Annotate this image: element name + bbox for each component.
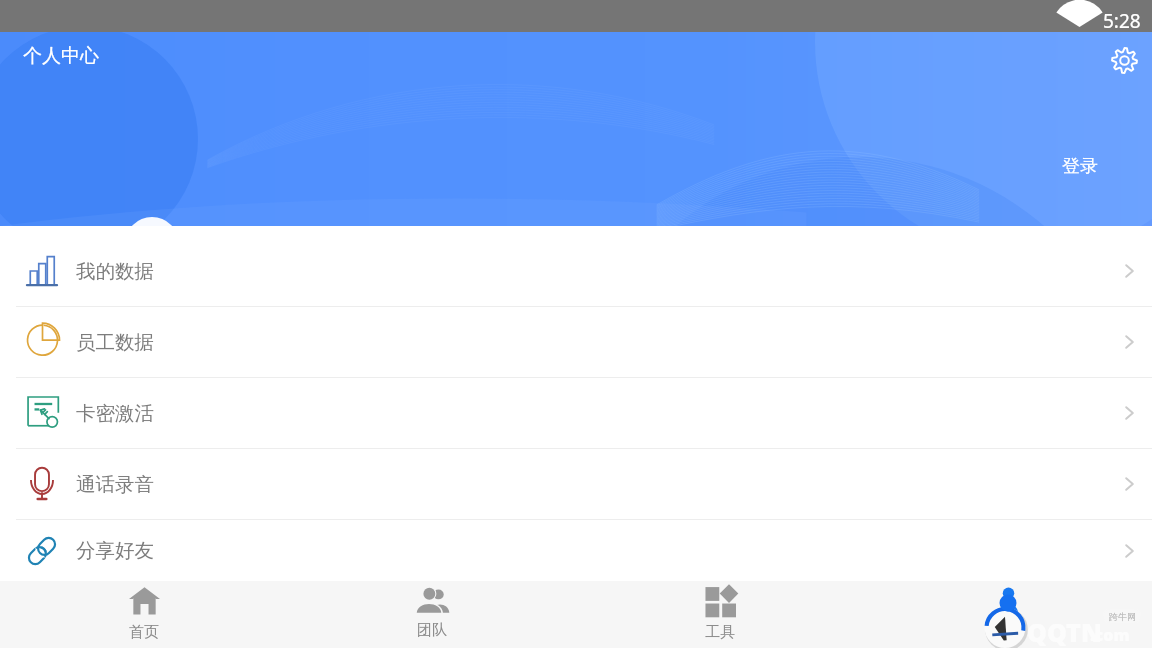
staticText: 首页	[129, 623, 159, 642]
button[interactable]: 团队	[288, 581, 576, 648]
staticText: QQTN	[1027, 615, 1102, 648]
staticText: 我的数据	[76, 259, 154, 284]
staticText: 工具	[705, 623, 735, 642]
button[interactable]: 我的	[864, 581, 1152, 648]
staticText: 卡密激活	[76, 401, 154, 426]
button[interactable]: 首页	[0, 581, 288, 648]
staticText: 团队	[417, 621, 447, 640]
staticText: 5:28	[1103, 8, 1141, 34]
staticText: 分享好友	[76, 538, 154, 563]
staticText: 通话录音	[76, 472, 154, 497]
staticText: 我的	[993, 621, 1023, 640]
button[interactable]: 卡密激活	[0, 378, 1152, 448]
button[interactable]: Settings	[1104, 40, 1144, 80]
staticText: 登录	[1062, 155, 1098, 178]
staticText: 跨牛网	[1109, 611, 1136, 622]
staticText: 个人中心	[23, 44, 99, 68]
button[interactable]: 分享好友	[0, 520, 1152, 581]
button[interactable]: 通话录音	[0, 449, 1152, 519]
staticText: 员工数据	[76, 330, 154, 355]
button[interactable]: 登录	[1050, 150, 1110, 183]
button[interactable]: 工具	[576, 581, 864, 648]
button[interactable]: 我的数据	[0, 236, 1152, 306]
button[interactable]: 员工数据	[0, 307, 1152, 377]
